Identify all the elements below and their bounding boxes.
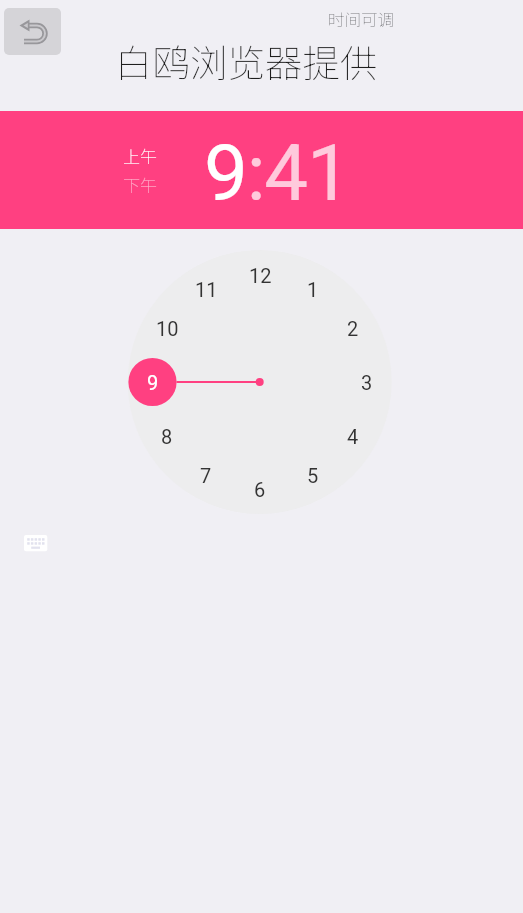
staticText: 8 [161,425,173,448]
staticText: 9:41 [204,128,350,219]
staticText: 9 [147,371,159,394]
staticText: 4 [347,425,359,448]
staticText: 6 [254,478,266,501]
button[interactable]: 下午 [100,171,180,197]
staticText: 10 [156,317,179,340]
staticText: 11 [195,278,218,301]
staticText: 12 [249,264,272,287]
staticText: 2 [347,317,359,340]
staticText: 3 [361,371,373,394]
staticText: 5 [307,464,319,487]
button[interactable] [24,535,48,552]
staticText: 时间可调 [328,7,394,31]
staticText: 1 [307,278,319,301]
button[interactable]: 上午 [100,142,180,168]
staticText: 上午 [123,143,157,168]
staticText: 下午 [123,172,157,197]
staticText: 白鸥浏览器提供 [115,33,378,87]
button[interactable]: 9 [129,358,177,406]
button[interactable] [4,8,61,55]
staticText: 7 [200,464,212,487]
